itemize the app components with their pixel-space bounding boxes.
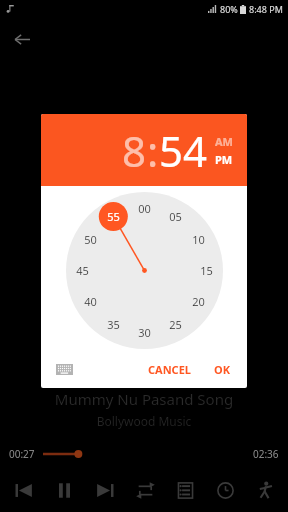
button[interactable]: Sleep timer <box>205 473 245 507</box>
button[interactable]: Shake control <box>245 473 285 507</box>
staticText: 30 <box>138 325 151 340</box>
staticText: 80% <box>220 3 238 15</box>
staticText: 00:27 <box>9 447 35 461</box>
button[interactable]: Playlist <box>165 473 205 507</box>
staticText: Bollywood Music <box>0 413 288 429</box>
button[interactable]: Keyboard input <box>52 358 76 380</box>
button[interactable]: Next <box>85 473 125 507</box>
button[interactable]: Repeat <box>125 473 165 507</box>
button[interactable]: 8 <box>122 122 147 179</box>
button[interactable]: 54 <box>159 122 208 179</box>
button[interactable]: Pause <box>44 473 85 507</box>
staticText: 55 <box>107 209 120 224</box>
staticText: CANCEL <box>148 362 191 377</box>
staticText: 40 <box>84 294 97 309</box>
button[interactable]: AM <box>215 134 233 149</box>
button[interactable]: PM <box>215 152 233 167</box>
staticText: : <box>147 122 159 179</box>
staticText: 05 <box>169 209 182 224</box>
staticText: 45 <box>76 263 89 278</box>
staticText: 8 <box>122 122 147 179</box>
staticText: 50 <box>84 232 97 247</box>
button[interactable]: Previous <box>3 473 44 507</box>
staticText: 8:48 PM <box>249 3 283 15</box>
button[interactable]: Minute selector <box>66 192 223 349</box>
staticText: 35 <box>107 317 120 332</box>
staticText: 25 <box>169 317 182 332</box>
staticText: 54 <box>159 122 208 179</box>
staticText: Mummy Nu Pasand Song <box>0 389 288 409</box>
staticText: 15 <box>200 263 213 278</box>
staticText: 10 <box>192 232 205 247</box>
staticText: 00 <box>138 201 151 216</box>
button[interactable]: OK <box>209 358 236 381</box>
staticText: 20 <box>192 294 205 309</box>
staticText: AM <box>215 134 233 149</box>
button[interactable]: Back <box>7 24 37 54</box>
button[interactable]: CANCEL <box>143 358 196 381</box>
staticText: OK <box>214 362 231 377</box>
staticText: PM <box>215 152 233 167</box>
staticText: 02:36 <box>253 447 279 461</box>
